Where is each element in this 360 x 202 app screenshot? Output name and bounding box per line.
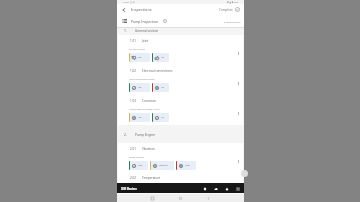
staticText: No [161,116,164,119]
staticText: 2.02 [130,176,136,180]
staticText: 1.02 [130,69,136,73]
button[interactable]: 1.01 [130,35,243,46]
button[interactable]: 1. [124,28,244,33]
button[interactable]: No [152,83,169,92]
button[interactable]: Notifications [223,185,230,192]
staticText: Yes [138,86,142,89]
button[interactable]: Recents [148,194,157,202]
staticText: No [161,86,164,89]
staticText: 1. [124,28,127,33]
staticText: 2.01 [130,147,136,151]
staticText: Complete [219,8,233,12]
staticText: Is there visible oil buildup or rust? [129,108,160,111]
staticText: Pump Engine [135,133,155,137]
button[interactable]: Medium [150,161,174,170]
staticText: 2. [124,132,127,137]
button[interactable]: 2.02 [130,173,243,183]
staticText: Yes [138,116,142,119]
button[interactable]: Back [204,194,213,202]
staticText: No [161,56,164,59]
staticText: 10:04 □ ✉ [123,1,135,4]
staticText: Electrical connections [142,69,173,73]
staticText: Corrosion [142,99,156,103]
button[interactable]: Back [120,6,128,14]
staticText: 1.03 [130,99,136,103]
button[interactable]: Yes [129,53,150,62]
button[interactable]: No [152,113,169,122]
staticText: High [185,164,190,167]
button[interactable]: Home [176,194,185,202]
staticText: ▼ ▲ ▮ 94% [227,1,239,4]
button[interactable]: More options [234,76,242,90]
button[interactable]: Cloud [212,185,219,192]
staticText: Medium [159,164,168,167]
button[interactable]: High [176,161,196,170]
staticText: Engine vibration [129,156,144,159]
button[interactable]: 1.03 [130,95,243,106]
button[interactable]: Scroll to bottom [241,170,248,177]
staticText: General section [135,29,159,33]
button[interactable]: Sections [120,17,128,25]
button[interactable]: Information [162,18,168,24]
staticText: Temperature [142,176,161,180]
staticText: Yes [138,56,142,59]
button[interactable]: Yes [129,113,150,122]
staticText: Low [138,164,143,167]
button[interactable]: No [152,53,169,62]
staticText: Vibration [142,147,155,151]
button[interactable]: Location [201,185,208,192]
staticText: Joint [142,39,149,43]
staticText: Pump Inspection [131,19,159,24]
button[interactable]: More options [234,154,242,168]
staticText: Are the connections secure? [129,78,155,81]
button[interactable]: More options [234,46,242,60]
staticText: Inspections [131,7,152,12]
button[interactable]: 2. [124,132,244,137]
staticText: Any signs of leak? [129,48,146,51]
button[interactable]: Complete [218,6,241,13]
button[interactable]: More options [234,106,242,120]
button[interactable]: Low [129,161,148,170]
button[interactable]: 1.02 [130,65,243,76]
staticText: 1.01 [130,39,136,43]
staticText: IBM Maximo [121,187,137,190]
button[interactable]: Apps [234,185,241,192]
staticText: 6 required of 9 [224,20,241,23]
button[interactable]: 2.01 [130,143,243,154]
button[interactable]: Yes [129,83,150,92]
